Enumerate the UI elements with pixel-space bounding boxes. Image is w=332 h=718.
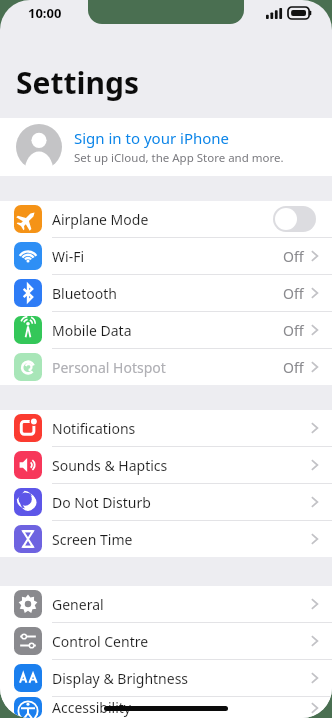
staticText: Bluetooth	[52, 284, 283, 303]
button[interactable]: Airplane Mode toggle	[273, 206, 316, 232]
button[interactable]: Control Centre	[0, 623, 332, 659]
staticText: Set up iCloud, the App Store and more.	[74, 150, 284, 166]
staticText: Mobile Data	[52, 321, 283, 340]
button[interactable]: Wi-Fi	[0, 238, 332, 274]
staticText: Notifications	[52, 419, 311, 438]
staticText: Off	[283, 358, 304, 377]
staticText: Display & Brightness	[52, 669, 311, 688]
button[interactable]: Sign in to your iPhone	[0, 118, 332, 176]
button[interactable]: Airplane Mode	[0, 201, 332, 237]
staticText: Do Not Disturb	[52, 493, 311, 512]
staticText: Sounds & Haptics	[52, 456, 311, 475]
staticText: Accessibility	[52, 698, 311, 717]
staticText: Off	[283, 321, 304, 340]
staticText: Off	[283, 247, 304, 266]
staticText: Personal Hotspot	[52, 358, 283, 377]
staticText: 10:00	[28, 4, 62, 22]
button[interactable]: Accessibility	[0, 697, 332, 718]
button[interactable]: Bluetooth	[0, 275, 332, 311]
staticText: Airplane Mode	[52, 210, 273, 229]
button[interactable]: General	[0, 586, 332, 622]
staticText: Wi-Fi	[52, 247, 283, 266]
button[interactable]: Screen Time	[0, 521, 332, 557]
staticText: Off	[283, 284, 304, 303]
button[interactable]: Mobile Data	[0, 312, 332, 348]
button[interactable]: Display & Brightness	[0, 660, 332, 696]
button[interactable]: Do Not Disturb	[0, 484, 332, 520]
staticText: General	[52, 595, 311, 614]
button[interactable]: Personal Hotspot	[0, 349, 332, 385]
staticText: Settings	[16, 62, 139, 103]
button[interactable]: Sounds & Haptics	[0, 447, 332, 483]
staticText: Sign in to your iPhone	[74, 128, 230, 148]
staticText: Control Centre	[52, 632, 311, 651]
staticText: Screen Time	[52, 530, 311, 549]
button[interactable]: Notifications	[0, 410, 332, 446]
